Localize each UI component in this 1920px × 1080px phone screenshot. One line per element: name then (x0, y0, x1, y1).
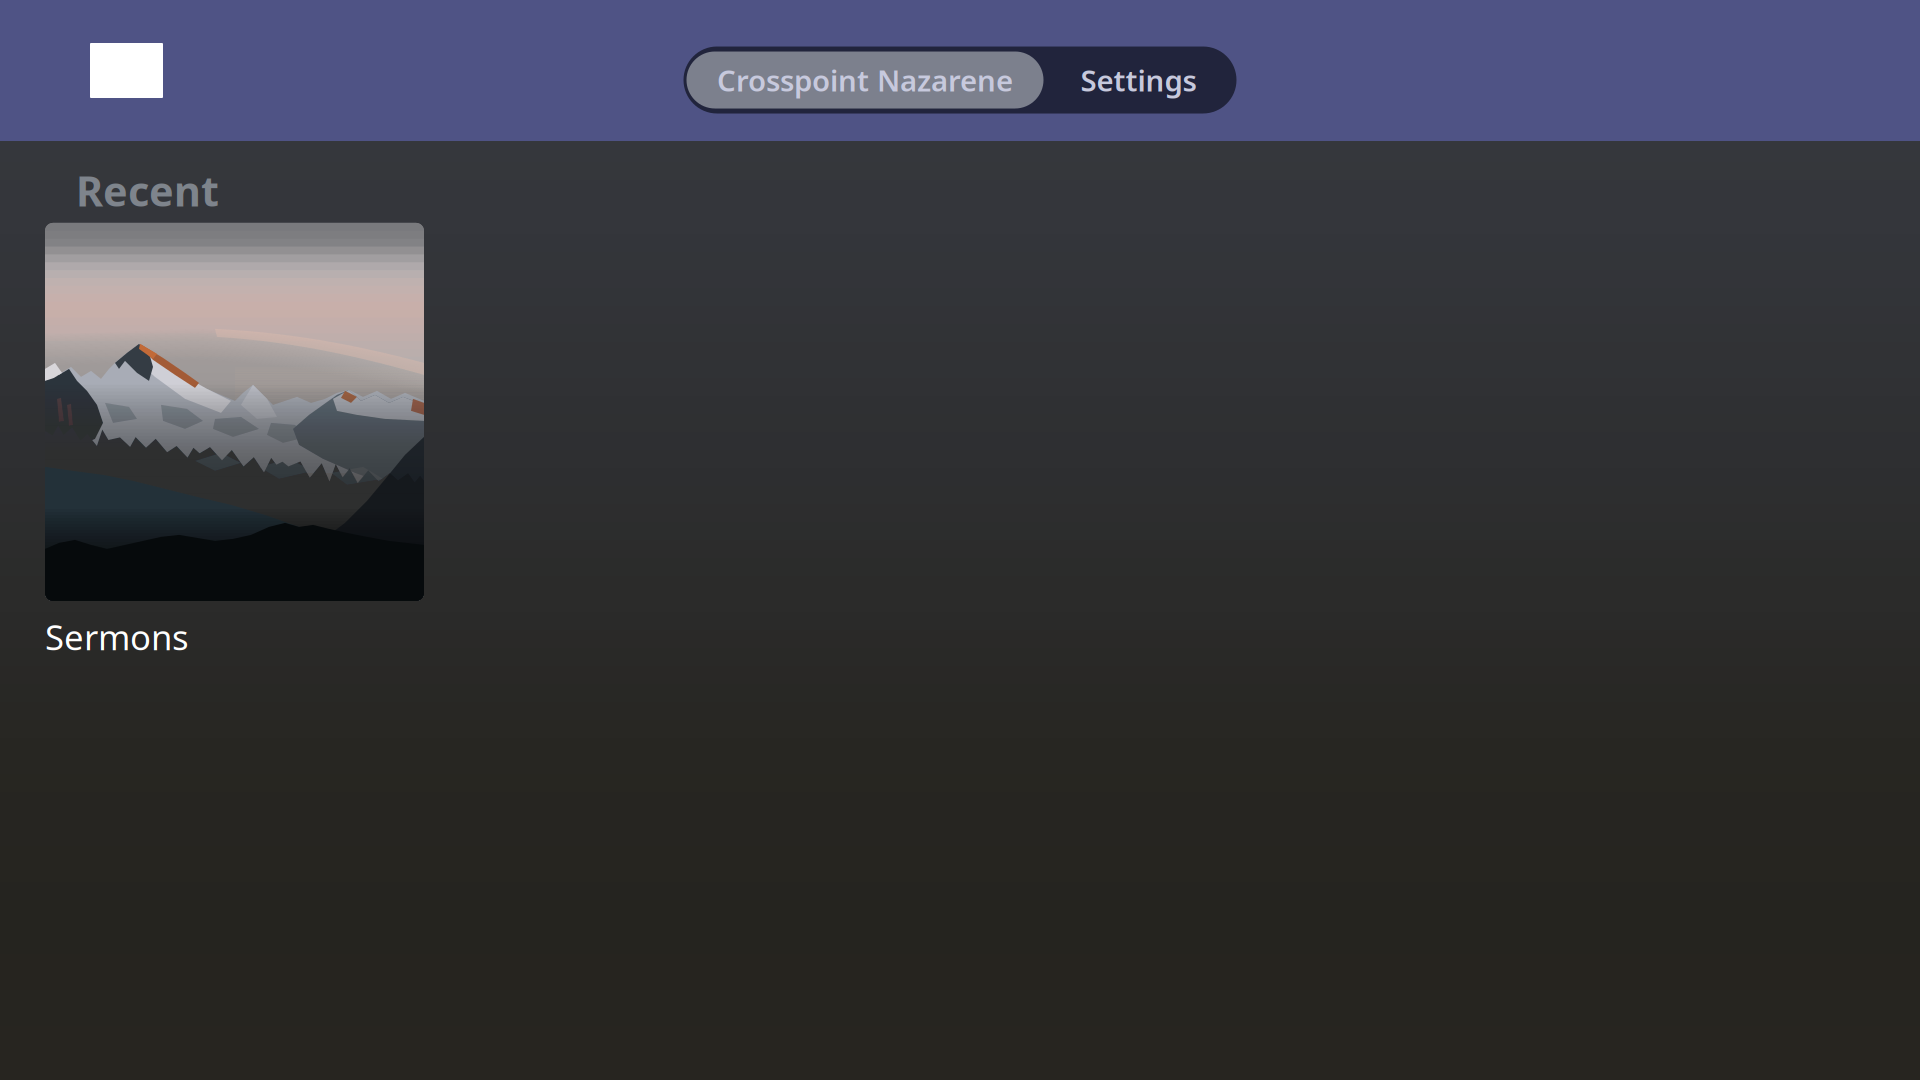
staticText: Recent (76, 163, 219, 218)
button[interactable]: Crosspoint Nazarene (0, 27, 183, 114)
staticText: Crosspoint Nazarene (717, 60, 1013, 99)
staticText: Settings (1080, 60, 1196, 99)
button[interactable]: Settings (1043, 51, 1233, 108)
button[interactable]: Crosspoint Nazarene (686, 51, 1043, 108)
staticText: Sermons (45, 614, 189, 660)
button[interactable]: Sermons (0, 218, 424, 660)
